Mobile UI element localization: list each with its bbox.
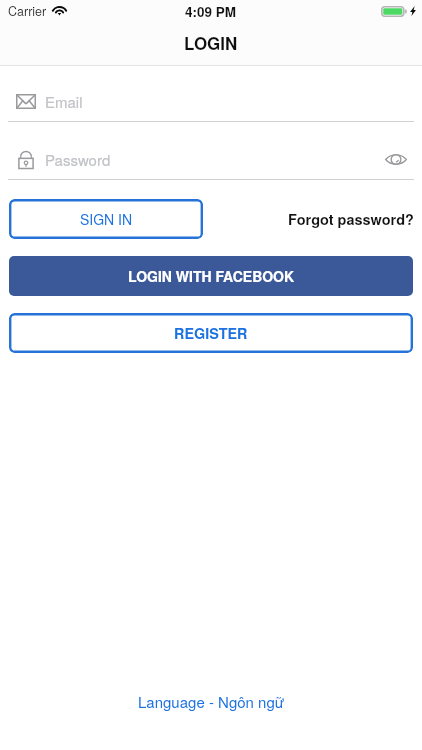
staticText: Email — [45, 91, 83, 112]
staticText: REGISTER — [174, 323, 248, 344]
staticText: Carrier — [8, 2, 47, 20]
staticText: SIGN IN — [80, 209, 133, 229]
staticText: Forgot password? — [288, 209, 414, 230]
staticText: Language - Ngôn ngữ — [138, 691, 284, 712]
button[interactable]: REGISTER — [9, 313, 413, 353]
staticText: LOGIN WITH FACEBOOK — [128, 266, 295, 286]
staticText: Password — [45, 149, 111, 170]
button[interactable]: SIGN IN — [9, 199, 203, 239]
button[interactable]: Show password — [381, 144, 411, 174]
staticText: LOGIN — [184, 31, 238, 55]
button[interactable]: Forgot password? — [288, 199, 414, 239]
button[interactable]: Language - Ngôn ngữ — [130, 687, 292, 716]
button[interactable]: LOGIN WITH FACEBOOK — [9, 256, 413, 296]
staticText: 4:09 PM — [185, 2, 237, 21]
